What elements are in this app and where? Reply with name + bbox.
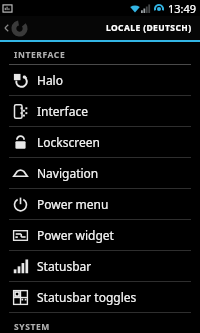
button[interactable]: Power menu	[0, 189, 200, 219]
staticText: Power widget	[37, 227, 114, 243]
button[interactable]: Interface	[0, 96, 200, 126]
staticText: SYSTEM	[14, 321, 50, 330]
staticText: 13:49	[168, 1, 197, 16]
staticText: Statusbar	[37, 258, 92, 274]
staticText: Halo	[37, 72, 63, 88]
button[interactable]: Power widget	[0, 220, 200, 250]
staticText: Lockscreen	[37, 134, 100, 150]
staticText: INTERFACE	[14, 49, 66, 61]
other: Navigate up	[4, 23, 9, 33]
button[interactable]: Navigation	[0, 158, 200, 188]
button[interactable]: Statusbar toggles	[0, 282, 200, 312]
button[interactable]: Statusbar	[0, 251, 200, 281]
button[interactable]: Halo	[0, 65, 200, 95]
button[interactable]: Navigate up	[0, 16, 200, 40]
staticText: Power menu	[37, 196, 109, 212]
staticText: Statusbar toggles	[37, 289, 137, 305]
staticText: LOCALE (DEUTSCH)	[106, 22, 192, 34]
staticText: Navigation	[37, 165, 99, 181]
button[interactable]: Lockscreen	[0, 127, 200, 157]
staticText: Interface	[37, 103, 88, 119]
